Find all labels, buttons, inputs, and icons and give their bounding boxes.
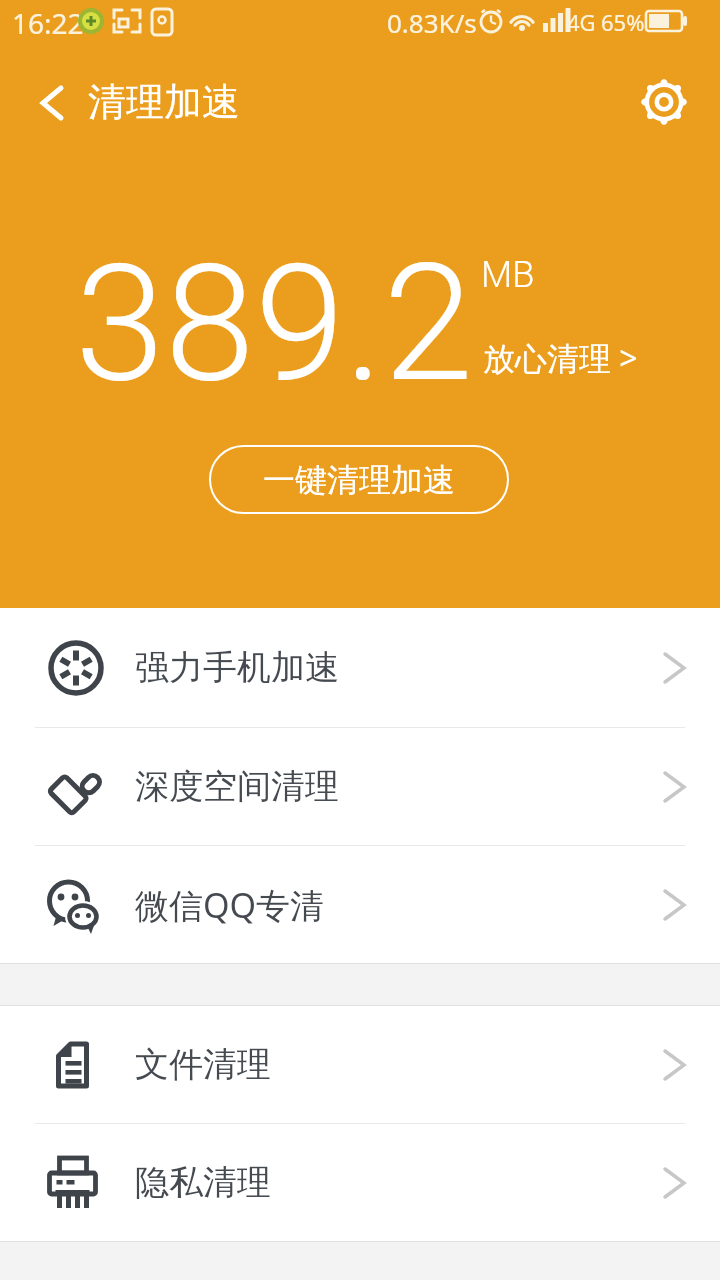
- button[interactable]: [40, 86, 64, 120]
- staticText: 389.2: [75, 229, 474, 419]
- staticText: 微信QQ专清: [135, 882, 325, 928]
- button[interactable]: [640, 78, 688, 126]
- staticText: 4G: [567, 7, 596, 37]
- staticText: 一键清理加速: [263, 460, 455, 500]
- staticText: 0.83K/s: [387, 5, 477, 40]
- staticText: 强力手机加速: [135, 646, 339, 689]
- button[interactable]: 一键清理加速: [209, 445, 509, 514]
- staticText: MB: [481, 254, 535, 296]
- staticText: 16:22: [12, 4, 84, 42]
- button[interactable]: 文件清理: [0, 1006, 720, 1123]
- staticText: 清理加速: [88, 78, 240, 126]
- staticText: 65%: [601, 7, 645, 37]
- button[interactable]: 深度空间清理: [0, 728, 720, 845]
- button[interactable]: 放心清理 >: [483, 336, 638, 380]
- staticText: 文件清理: [135, 1043, 271, 1086]
- button[interactable]: 强力手机加速: [0, 608, 720, 727]
- button[interactable]: 微信QQ专清: [0, 846, 720, 963]
- staticText: 隐私清理: [135, 1161, 271, 1204]
- button[interactable]: 隐私清理: [0, 1124, 720, 1241]
- staticText: 深度空间清理: [135, 765, 339, 808]
